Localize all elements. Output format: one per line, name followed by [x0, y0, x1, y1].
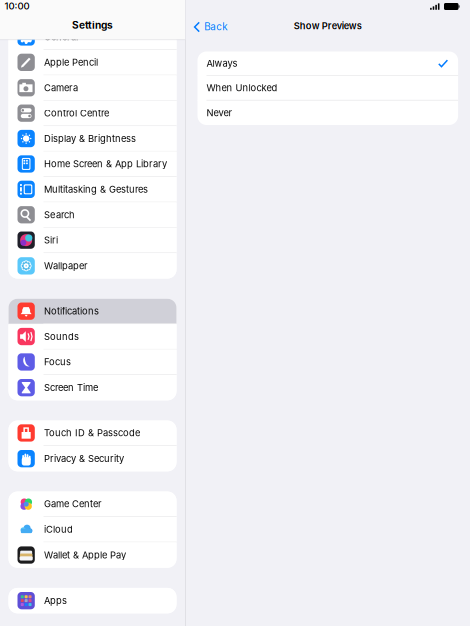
- button[interactable]: Control Centre: [8, 101, 176, 126]
- button[interactable]: Screen Time: [8, 375, 176, 400]
- button[interactable]: Touch ID & Passcode: [8, 421, 176, 446]
- staticText: When Unlocked: [206, 82, 277, 94]
- staticText: iCloud: [44, 524, 73, 535]
- button[interactable]: Notifications: [8, 299, 176, 324]
- staticText: Never: [206, 107, 232, 118]
- staticText: Home Screen & App Library: [44, 158, 167, 170]
- button[interactable]: Camera: [8, 75, 176, 101]
- button[interactable]: Search: [8, 202, 176, 228]
- staticText: Settings: [72, 19, 113, 31]
- button[interactable]: Back: [186, 19, 233, 34]
- staticText: Back: [204, 21, 227, 33]
- button[interactable]: Privacy & Security: [8, 446, 176, 471]
- staticText: Sounds: [44, 331, 79, 342]
- staticText: Camera: [44, 82, 78, 93]
- button[interactable]: Focus: [8, 350, 176, 375]
- button[interactable]: Game Center: [8, 492, 176, 517]
- staticText: 10:00: [4, 0, 29, 12]
- button[interactable]: Siri: [8, 228, 176, 253]
- staticText: Search: [44, 209, 75, 220]
- staticText: Privacy & Security: [44, 453, 124, 464]
- button[interactable]: Display & Brightness: [8, 126, 176, 152]
- staticText: General: [44, 31, 78, 43]
- staticText: Wallet & Apple Pay: [44, 549, 126, 561]
- staticText: Apps: [44, 595, 67, 606]
- button[interactable]: Apps: [8, 588, 176, 613]
- staticText: Apple Pencil: [44, 57, 98, 68]
- staticText: Game Center: [44, 498, 102, 510]
- button[interactable]: Wallet & Apple Pay: [8, 542, 176, 568]
- staticText: Siri: [44, 234, 58, 246]
- button[interactable]: Apple Pencil: [8, 50, 176, 75]
- staticText: Focus: [44, 356, 71, 368]
- button[interactable]: Always: [197, 51, 458, 76]
- button[interactable]: Wallpaper: [8, 253, 176, 279]
- staticText: Control Centre: [44, 107, 109, 119]
- button[interactable]: General: [8, 25, 176, 50]
- staticText: Notifications: [44, 305, 99, 317]
- staticText: Display & Brightness: [44, 133, 136, 144]
- button[interactable]: When Unlocked: [197, 76, 458, 100]
- staticText: Show Previews: [294, 20, 362, 31]
- button[interactable]: Never: [197, 100, 458, 125]
- staticText: Always: [206, 58, 237, 69]
- staticText: Wallpaper: [44, 260, 88, 271]
- button[interactable]: Sounds: [8, 324, 176, 350]
- button[interactable]: Home Screen & App Library: [8, 152, 176, 177]
- button[interactable]: Multitasking & Gestures: [8, 177, 176, 202]
- staticText: Screen Time: [44, 382, 98, 393]
- staticText: Multitasking & Gestures: [44, 184, 148, 195]
- button[interactable]: iCloud: [8, 517, 176, 542]
- staticText: Touch ID & Passcode: [44, 427, 140, 439]
